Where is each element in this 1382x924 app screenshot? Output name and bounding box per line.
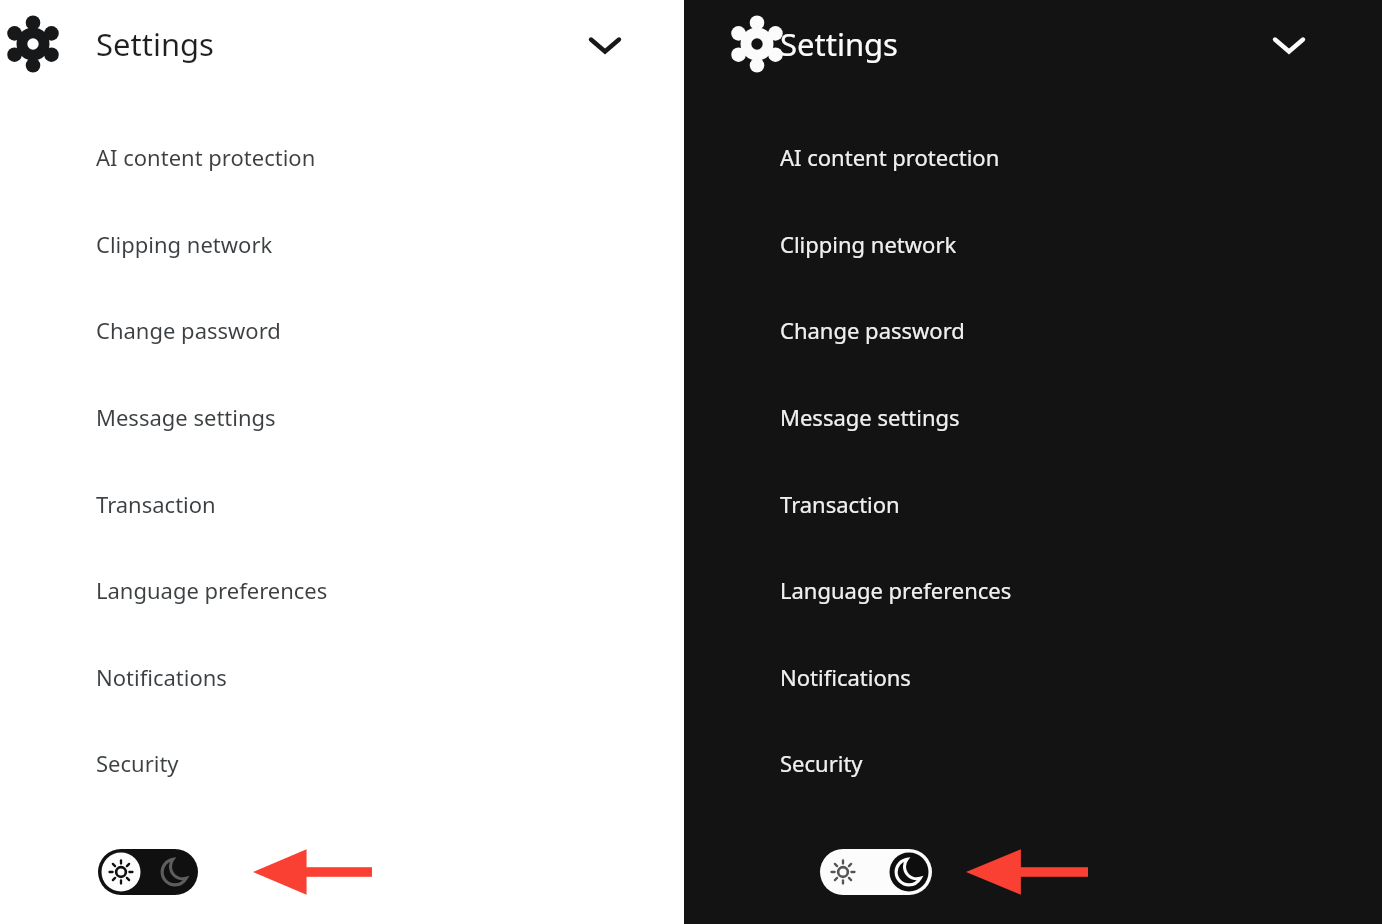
button[interactable]: Clipping network	[86, 216, 546, 272]
button[interactable]: Message settings	[86, 389, 546, 445]
staticText: Security	[780, 748, 863, 778]
staticText: Notifications	[780, 662, 911, 692]
button[interactable]: Settings	[88, 17, 528, 71]
staticText: Change password	[96, 315, 281, 345]
staticText: Settings	[780, 23, 898, 65]
staticText: AI content protection	[780, 142, 1000, 172]
button[interactable]: Transaction	[770, 476, 1230, 532]
button[interactable]: Transaction	[86, 476, 546, 532]
button[interactable]: Clipping network	[770, 216, 1230, 272]
staticText: Change password	[780, 315, 965, 345]
staticText: Security	[96, 748, 179, 778]
staticText: Transaction	[96, 489, 216, 519]
staticText: Language preferences	[780, 575, 1012, 605]
button[interactable]: Settings	[772, 17, 1212, 71]
button[interactable]: Change password	[86, 302, 546, 358]
button[interactable]: Settings	[730, 17, 784, 71]
button[interactable]: Collapse settings	[1263, 18, 1315, 70]
button[interactable]: Language preferences	[770, 562, 1230, 618]
button[interactable]: Settings	[6, 17, 60, 71]
staticText: Transaction	[780, 489, 900, 519]
staticText: Notifications	[96, 662, 227, 692]
staticText: Clipping network	[96, 229, 273, 259]
button[interactable]: Language preferences	[86, 562, 546, 618]
button[interactable]: Switch to light theme	[820, 849, 932, 895]
staticText: Language preferences	[96, 575, 328, 605]
button[interactable]: Notifications	[86, 649, 546, 705]
staticText: Message settings	[780, 402, 960, 432]
staticText: AI content protection	[96, 142, 316, 172]
staticText: Message settings	[96, 402, 276, 432]
button[interactable]: Collapse settings	[579, 18, 631, 70]
button[interactable]: Switch to dark theme	[98, 849, 198, 895]
staticText: Settings	[96, 23, 214, 65]
button[interactable]: AI content protection	[770, 129, 1230, 185]
button[interactable]: Notifications	[770, 649, 1230, 705]
button[interactable]: AI content protection	[86, 129, 546, 185]
button[interactable]: Security	[770, 735, 1230, 791]
button[interactable]: Security	[86, 735, 546, 791]
button[interactable]: Message settings	[770, 389, 1230, 445]
staticText: Clipping network	[780, 229, 957, 259]
button[interactable]: Change password	[770, 302, 1230, 358]
